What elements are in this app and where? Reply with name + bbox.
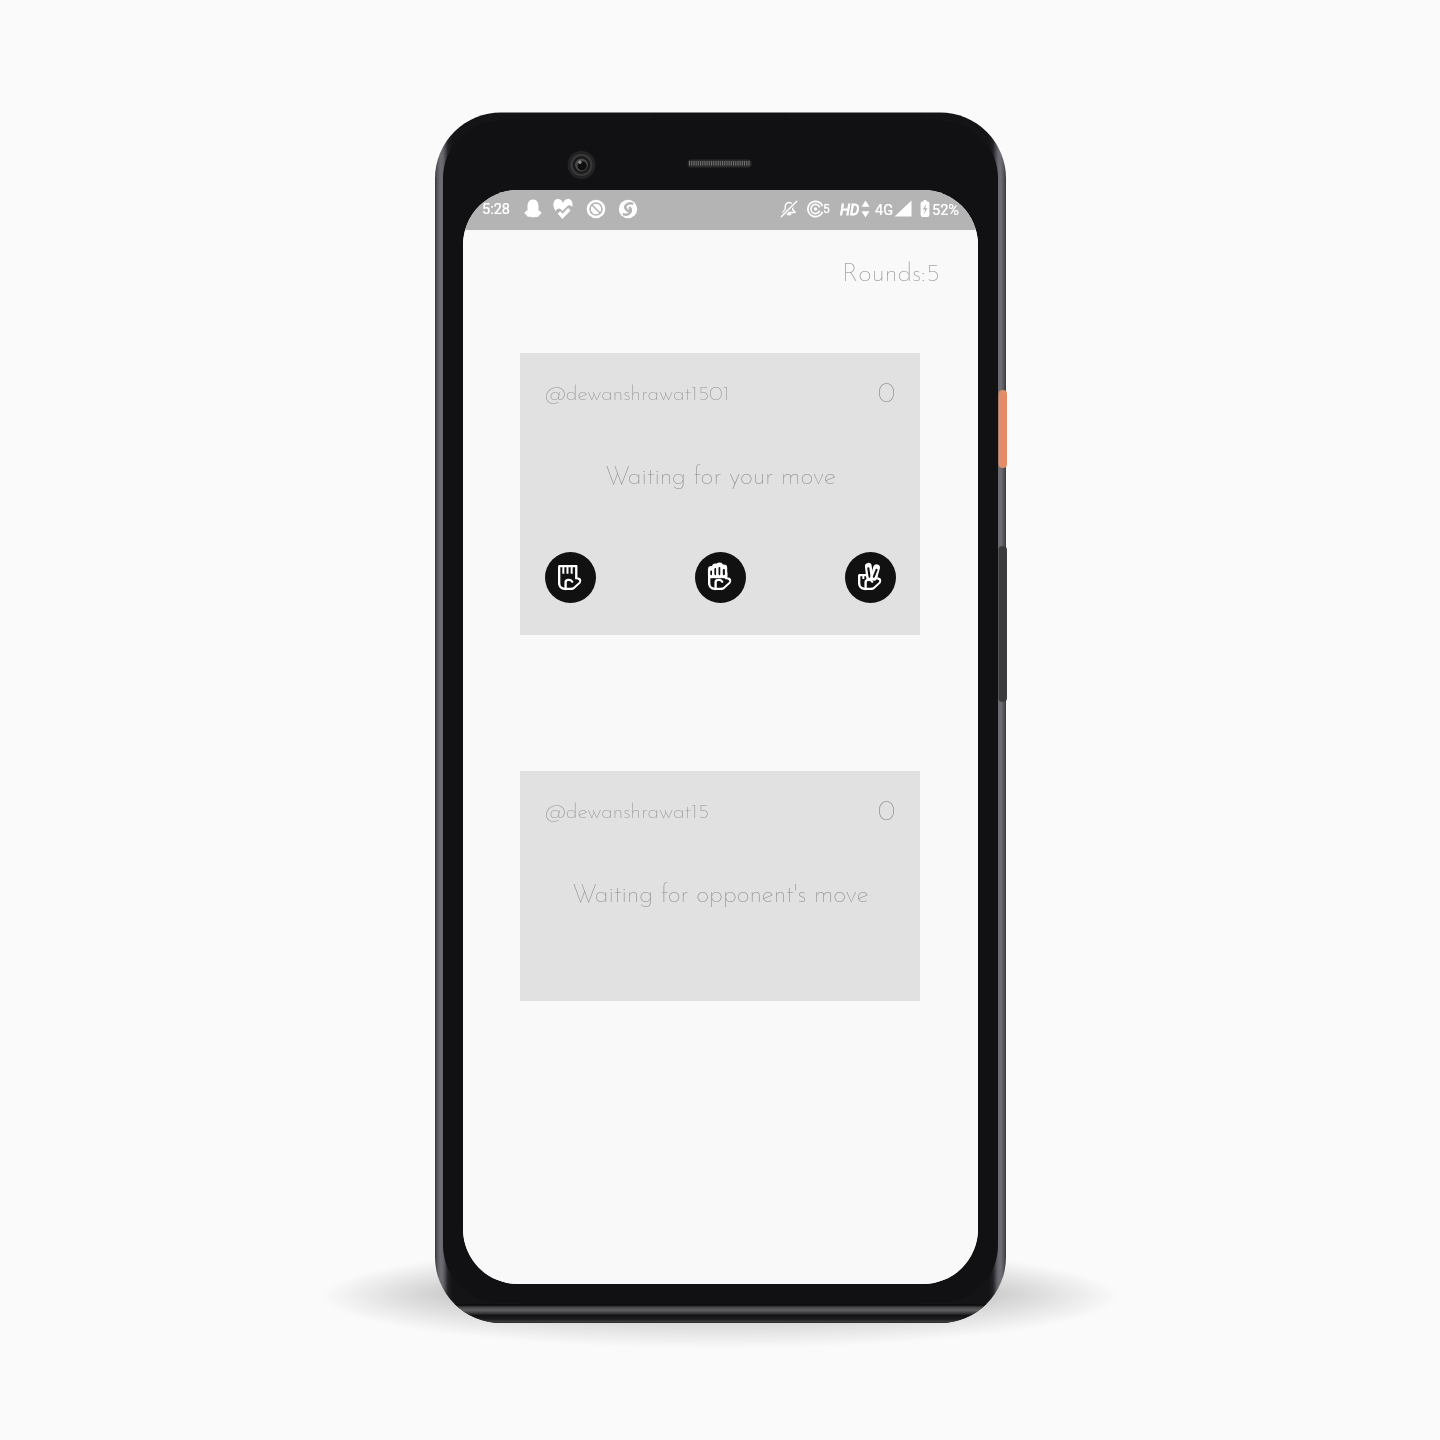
- staticText: HD: [840, 202, 860, 219]
- button[interactable]: @dewanshrawat1501: [520, 353, 920, 635]
- staticText: 5:28: [482, 201, 510, 218]
- staticText: @dewanshrawat15: [545, 802, 710, 823]
- staticText: 52%: [932, 202, 959, 219]
- staticText: Waiting for opponent's move: [572, 883, 869, 908]
- button[interactable]: Rock: [545, 552, 596, 603]
- staticText: 0: [878, 381, 895, 409]
- button[interactable]: Paper: [695, 552, 746, 603]
- button[interactable]: Scissors: [845, 552, 896, 603]
- staticText: Rounds:5: [842, 261, 941, 288]
- button[interactable]: @dewanshrawat15: [520, 771, 920, 1001]
- staticText: 4G: [875, 202, 894, 219]
- staticText: 0: [878, 799, 895, 827]
- staticText: 5: [823, 202, 830, 216]
- staticText: @dewanshrawat1501: [545, 384, 730, 405]
- staticText: Waiting for your move: [605, 465, 836, 490]
